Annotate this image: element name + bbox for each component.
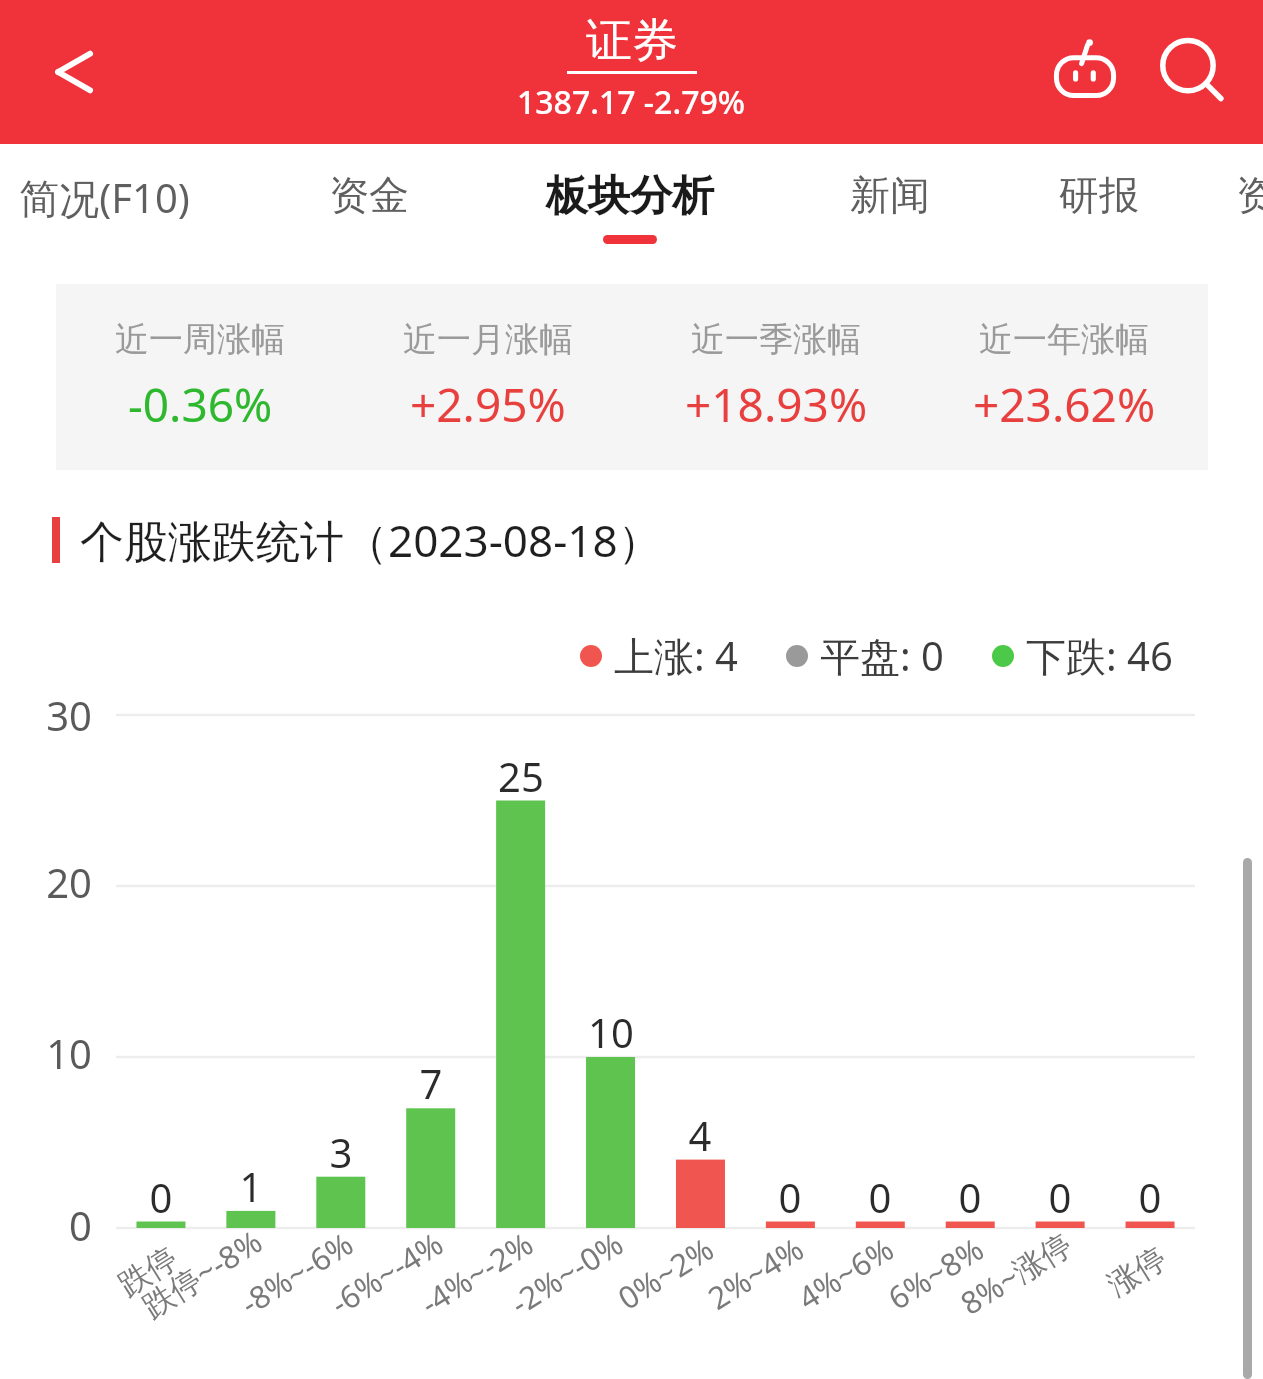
staticText: -8%~-6% [232, 1222, 361, 1324]
button[interactable]: 研报 [959, 144, 1239, 274]
button[interactable]: 资金 [229, 144, 509, 274]
staticText: 0%~2% [610, 1227, 721, 1319]
staticText: 个股涨跌统计（2023-08-18） [80, 510, 662, 570]
staticText: 1387.17 -2.79% [517, 80, 746, 124]
button[interactable]: 近一年涨幅 [920, 284, 1208, 470]
staticText: 资 [1236, 170, 1263, 220]
staticText: 30 [14, 688, 92, 742]
staticText: +2.95% [410, 373, 566, 436]
staticText: 6%~8% [880, 1227, 991, 1319]
staticText: 研报 [1059, 170, 1139, 220]
staticText: 近一周涨幅 [115, 318, 285, 361]
staticText: 0 [740, 1170, 840, 1224]
staticText: 新闻 [850, 170, 930, 220]
staticText: -4%~-2% [412, 1222, 541, 1324]
staticText: 资金 [329, 170, 409, 220]
staticText: 25 [471, 749, 571, 803]
staticText: 0 [111, 1170, 211, 1224]
button[interactable]: Back [30, 34, 106, 110]
staticText: 下跌: 46 [1026, 628, 1173, 683]
staticText: 近一年涨幅 [979, 318, 1149, 361]
staticText: -2%~-0% [502, 1222, 631, 1324]
button[interactable]: 简况(F10) [0, 144, 244, 274]
staticText: 8%~涨停 [952, 1222, 1080, 1324]
staticText: 10 [561, 1005, 661, 1059]
staticText: -0.36% [128, 373, 273, 436]
staticText: -6%~-4% [322, 1222, 451, 1324]
button[interactable]: 近一季涨幅 [632, 284, 920, 470]
staticText: 平盘: 0 [820, 628, 944, 683]
staticText: 7 [381, 1056, 481, 1110]
button[interactable]: 平盘: 0 [786, 628, 944, 683]
staticText: 上涨: 4 [614, 628, 738, 683]
staticText: 3 [291, 1125, 391, 1179]
staticText: 近一月涨幅 [403, 318, 573, 361]
staticText: 跌停 [111, 1238, 185, 1304]
staticText: 0 [920, 1170, 1020, 1224]
staticText: 0 [1010, 1170, 1110, 1224]
button[interactable]: 近一月涨幅 [344, 284, 632, 470]
staticText: 跌停~-8% [134, 1220, 270, 1326]
button[interactable]: 上涨: 4 [580, 628, 738, 683]
button[interactable]: 资 [1116, 144, 1263, 274]
button[interactable]: 近一周涨幅 [56, 284, 344, 470]
staticText: 2%~4% [700, 1227, 811, 1319]
button[interactable]: 板块分析 [490, 144, 770, 274]
staticText: 简况(F10) [19, 170, 190, 225]
staticText: 涨停 [1100, 1238, 1174, 1304]
staticText: 20 [14, 855, 92, 909]
staticText: 证券 [586, 12, 678, 70]
staticText: 0 [1100, 1170, 1200, 1224]
button[interactable]: 下跌: 46 [992, 628, 1173, 683]
staticText: 1 [201, 1159, 301, 1213]
staticText: +18.93% [685, 373, 868, 436]
staticText: 4 [650, 1108, 750, 1162]
staticText: 4%~6% [790, 1227, 901, 1319]
staticText: 10 [14, 1026, 92, 1080]
staticText: 0 [14, 1198, 92, 1252]
button[interactable]: 新闻 [750, 144, 1030, 274]
staticText: +23.62% [973, 373, 1156, 436]
staticText: 近一季涨幅 [691, 318, 861, 361]
button[interactable]: AI assistant [1043, 30, 1127, 114]
button[interactable]: Search [1151, 32, 1235, 116]
staticText: 0 [830, 1170, 930, 1224]
staticText: 板块分析 [546, 170, 714, 223]
